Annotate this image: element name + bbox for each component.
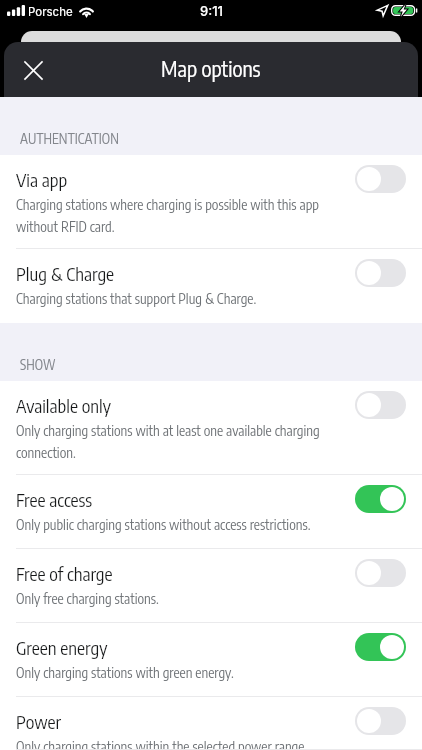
staticText: Plug & Charge	[16, 262, 115, 284]
button[interactable]: Power off	[355, 707, 406, 735]
staticText: Only charging stations within the select…	[16, 738, 308, 749]
button[interactable]: Free access	[0, 475, 422, 549]
staticText: Only public charging stations without ac…	[16, 516, 311, 533]
staticText: Free of charge	[16, 562, 113, 584]
button[interactable]: Available only	[0, 381, 422, 475]
staticText: Map options	[161, 55, 261, 81]
staticText: Charging stations where charging is poss…	[16, 196, 345, 235]
staticText: Available only	[16, 394, 111, 416]
staticText: Only charging stations with at least one…	[16, 422, 345, 461]
staticText: Charging stations that support Plug & Ch…	[16, 290, 257, 307]
staticText: 9:11	[200, 3, 223, 19]
button[interactable]: Close	[11, 48, 55, 92]
button[interactable]: Available only off	[355, 391, 406, 419]
button[interactable]: Green energy	[0, 623, 422, 697]
button[interactable]: Power	[0, 697, 422, 750]
staticText: Green energy	[16, 636, 108, 658]
button[interactable]: Free of charge off	[355, 559, 406, 587]
staticText: Only charging stations with green energy…	[16, 664, 234, 681]
button[interactable]: Free of charge	[0, 549, 422, 623]
button[interactable]: Via app off	[355, 165, 406, 193]
button[interactable]: Plug & Charge	[0, 249, 422, 323]
staticText: SHOW	[20, 356, 56, 373]
staticText: Via app	[16, 168, 68, 190]
button[interactable]: Green energy on	[355, 633, 406, 661]
button[interactable]: Free access on	[355, 485, 406, 513]
button[interactable]: Via app	[0, 155, 422, 249]
staticText: Power	[16, 710, 62, 732]
staticText: AUTHENTICATION	[20, 130, 119, 147]
button[interactable]: Plug & Charge off	[355, 259, 406, 287]
staticText: Free access	[16, 488, 93, 510]
staticText: Porsche	[28, 5, 73, 19]
staticText: Only free charging stations.	[16, 590, 159, 607]
